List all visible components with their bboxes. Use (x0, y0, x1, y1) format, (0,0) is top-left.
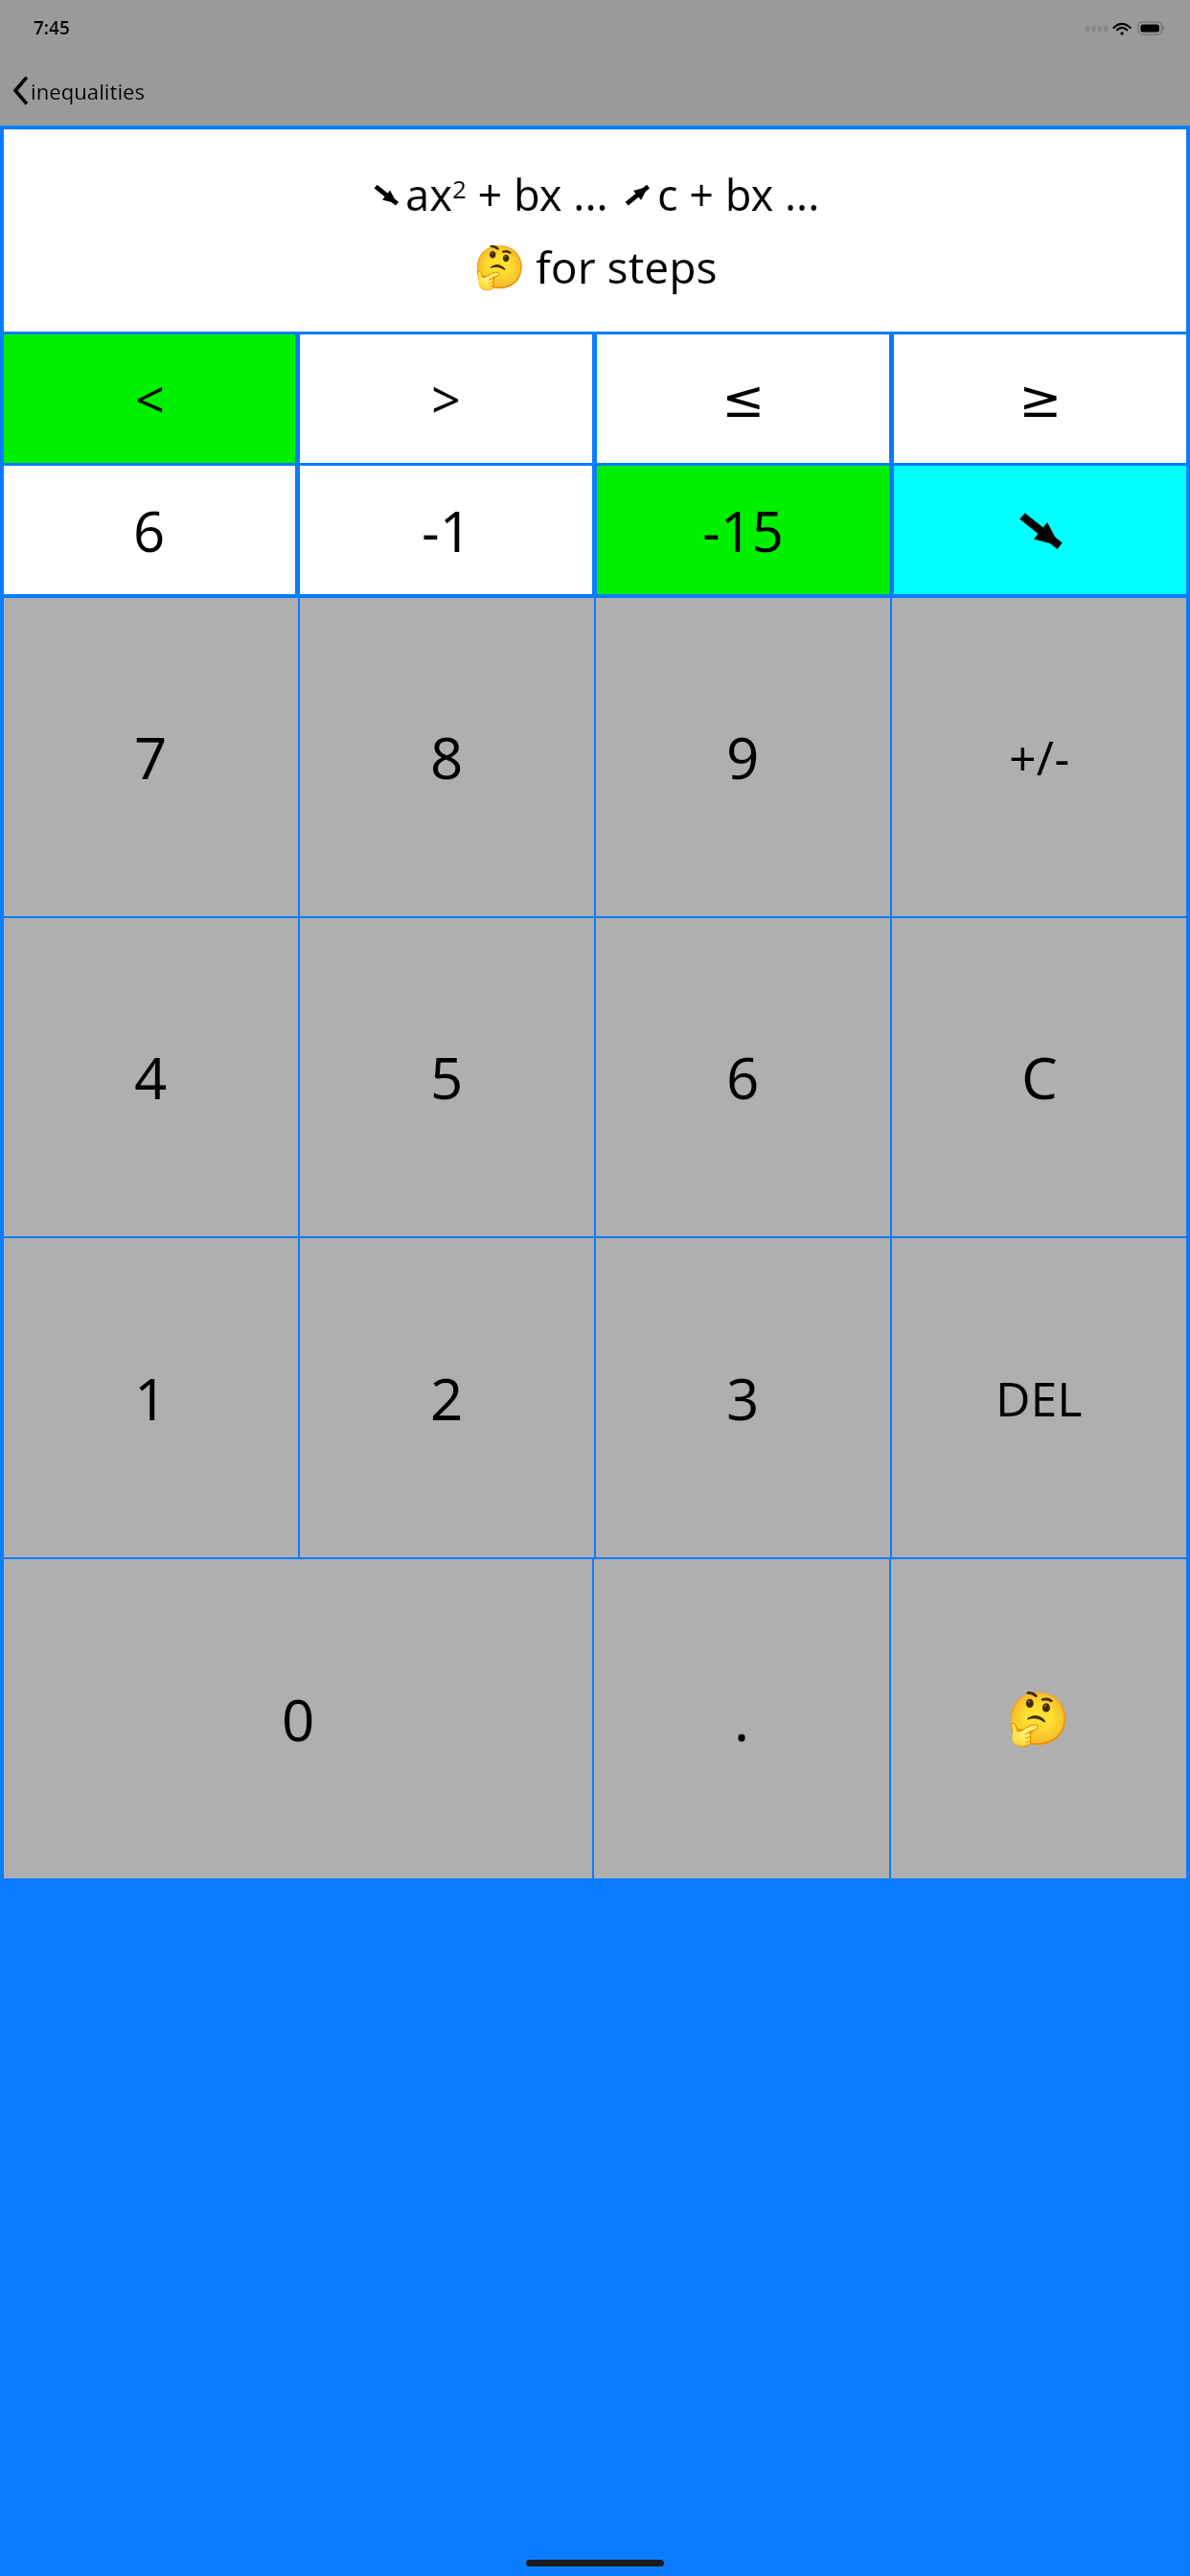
staticText: ax2 + bx ... (405, 165, 608, 223)
staticText: DEL (995, 1366, 1083, 1431)
button[interactable]: ≤ (597, 334, 889, 463)
staticText: for steps (536, 237, 718, 297)
button[interactable]: 8 (300, 598, 594, 916)
button[interactable]: ax2 + bx ... (4, 129, 1186, 332)
staticText: 5 (430, 1038, 464, 1116)
button[interactable]: > (300, 334, 592, 463)
button[interactable]: Next coefficient (894, 466, 1186, 594)
staticText: 🤔 (1006, 1689, 1071, 1749)
staticText: ≤ (721, 369, 766, 429)
button[interactable]: +/- (892, 598, 1186, 916)
button[interactable]: 2 (300, 1238, 594, 1557)
button[interactable]: 6 (4, 466, 295, 594)
staticText: 🤔 (473, 242, 526, 292)
button[interactable]: -1 (300, 466, 592, 594)
staticText: C (1021, 1038, 1058, 1116)
staticText: 6 (133, 493, 166, 568)
button[interactable]: 3 (596, 1238, 890, 1557)
staticText: . (734, 1680, 750, 1759)
staticText: -1 (422, 493, 471, 568)
staticText: -15 (702, 493, 785, 568)
button[interactable]: Show steps (891, 1559, 1186, 1878)
button[interactable]: C (892, 918, 1186, 1236)
button[interactable]: 5 (300, 918, 594, 1236)
button[interactable]: ≥ (894, 334, 1186, 463)
button[interactable]: DEL (892, 1238, 1186, 1557)
staticText: +/- (1009, 724, 1070, 790)
staticText: 6 (726, 1038, 760, 1116)
button[interactable]: . (594, 1559, 889, 1878)
button[interactable]: 7 (4, 598, 298, 916)
staticText: c + bx ... (657, 165, 820, 223)
button[interactable]: 6 (596, 918, 890, 1236)
staticText: 9 (726, 718, 760, 796)
staticText: 1 (134, 1359, 168, 1437)
staticText: < (135, 363, 165, 434)
other: Back (14, 79, 27, 103)
staticText: 7:45 (34, 15, 70, 40)
staticText: 0 (282, 1680, 315, 1759)
staticText: 3 (726, 1359, 760, 1437)
button[interactable]: 9 (596, 598, 890, 916)
staticText: ≥ (1018, 369, 1063, 429)
button[interactable]: < (4, 334, 295, 463)
staticText: 2 (430, 1359, 464, 1437)
button[interactable]: 1 (4, 1238, 298, 1557)
staticText: 4 (134, 1038, 168, 1116)
button[interactable]: -15 (597, 466, 889, 594)
button[interactable]: Back (0, 56, 1190, 126)
staticText: 8 (430, 718, 464, 796)
button[interactable]: 0 (4, 1559, 592, 1878)
staticText: 7 (134, 718, 168, 796)
button[interactable]: 4 (4, 918, 298, 1236)
staticText: > (431, 363, 461, 434)
staticText: inequalities (31, 77, 146, 105)
